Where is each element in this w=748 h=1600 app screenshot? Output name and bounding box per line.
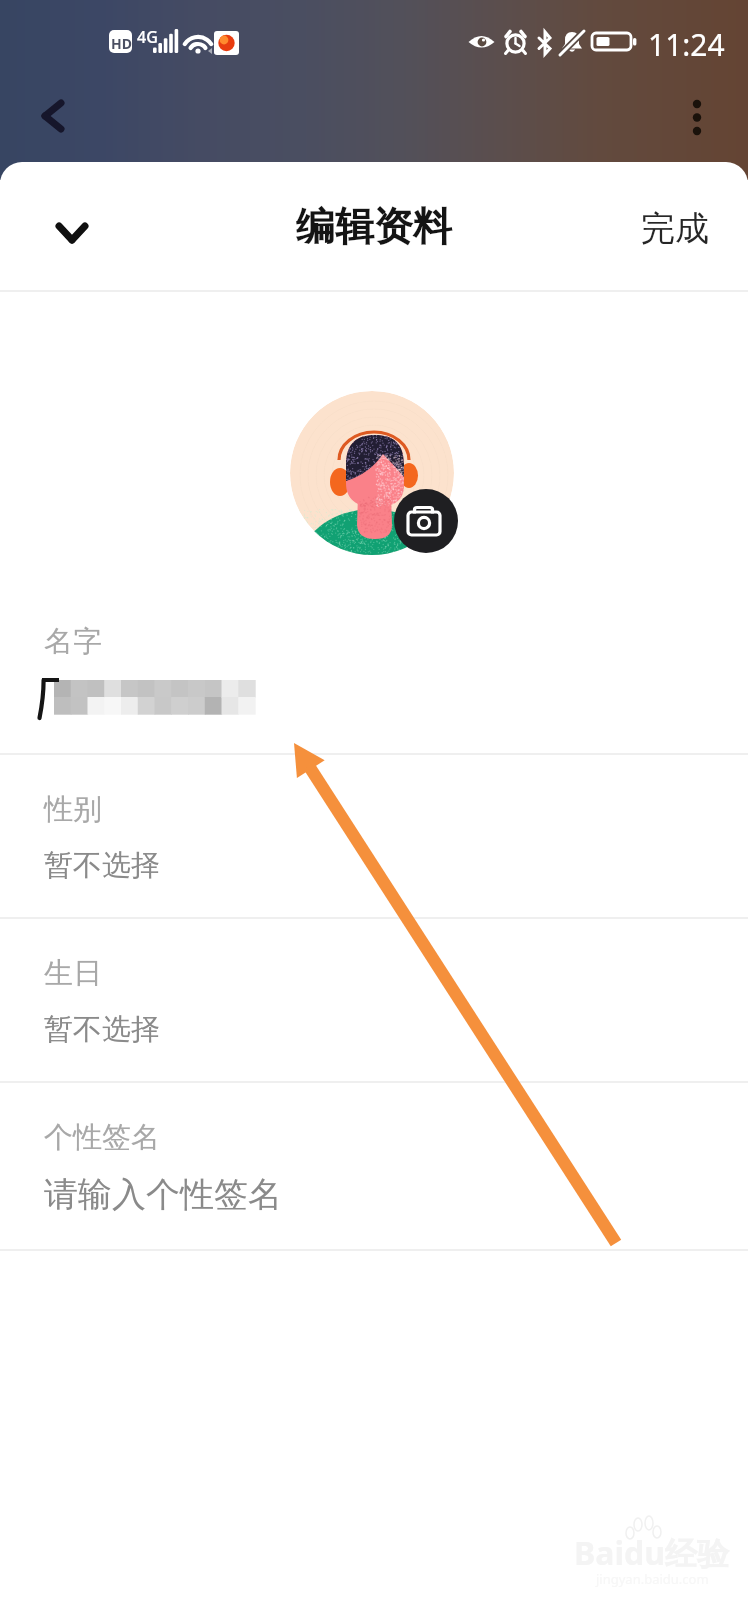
staticText: 暂不选择 [44, 847, 160, 884]
staticText: 11:24 [648, 24, 725, 65]
button[interactable]: Collapse [34, 188, 110, 264]
button[interactable]: Change profile photo [394, 489, 458, 553]
button[interactable]: 性别 [0, 755, 748, 919]
button[interactable]: More options [667, 95, 727, 155]
button[interactable]: Profile picture [290, 391, 454, 555]
button[interactable]: 完成 [633, 191, 717, 262]
button[interactable]: 名字 [0, 590, 748, 755]
staticText: 完成 [641, 207, 709, 250]
staticText: 性别 [44, 791, 102, 828]
staticText: 请输入个性签名 [44, 1173, 282, 1216]
staticText: 暂不选择 [44, 1011, 160, 1048]
button[interactable]: Back [22, 94, 84, 156]
staticText: 名字 [44, 623, 102, 660]
staticText: 4G [137, 26, 158, 48]
staticText: HD [111, 34, 132, 53]
button[interactable]: 生日 [0, 919, 748, 1083]
staticText: 生日 [44, 955, 102, 992]
staticText: 个性签名 [44, 1119, 160, 1156]
staticText: Baidu经验 [574, 1531, 730, 1575]
staticText: 编辑资料 [296, 202, 452, 251]
button[interactable]: 个性签名 [0, 1083, 748, 1251]
